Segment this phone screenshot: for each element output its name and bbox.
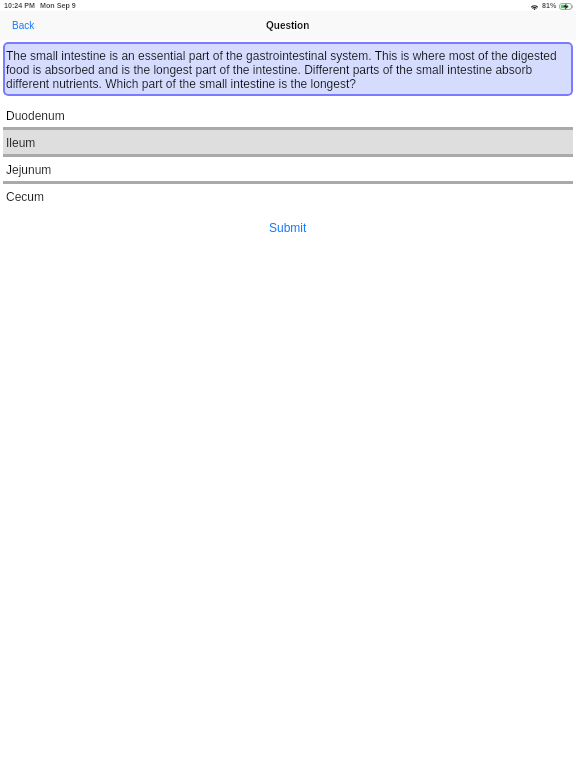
staticText: Back — [12, 20, 35, 31]
staticText: Jejunum — [6, 163, 52, 176]
button[interactable]: Back — [0, 14, 47, 37]
staticText: 81% — [542, 2, 557, 10]
staticText: The small intestine is an essential part… — [6, 48, 571, 90]
staticText: Ileum — [6, 136, 36, 149]
staticText: Duodenum — [6, 109, 65, 122]
button[interactable]: Duodenum — [3, 103, 573, 130]
other: Battery 81 percent, charging — [559, 3, 573, 10]
staticText: 10:24 PM — [4, 2, 35, 10]
staticText: Submit — [269, 221, 307, 234]
staticText: Mon Sep 9 — [40, 2, 76, 10]
other: Wi-Fi connected — [530, 3, 539, 10]
staticText: Cecum — [6, 190, 45, 203]
button[interactable]: Cecum — [3, 184, 573, 208]
button[interactable]: Submit — [249, 218, 327, 237]
button[interactable]: Jejunum — [3, 157, 573, 184]
button[interactable]: Ileum — [3, 130, 573, 157]
staticText: Question — [266, 20, 310, 31]
